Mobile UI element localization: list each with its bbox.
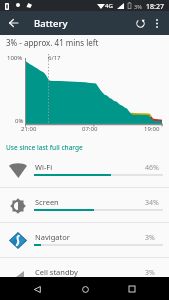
staticText: 18:27 (146, 2, 164, 12)
staticText: 3% (145, 233, 155, 243)
staticText: 3% - approx. 41 mins left (6, 37, 99, 48)
button[interactable]: Refresh (134, 17, 146, 29)
button[interactable]: Navigator (0, 223, 169, 258)
staticText: Screen (35, 197, 59, 207)
staticText: Navigator (35, 232, 70, 242)
button[interactable]: More options (149, 15, 165, 31)
staticText: Battery (34, 17, 68, 30)
staticText: 100% (7, 54, 23, 62)
staticText: 6/17 (48, 54, 61, 62)
staticText: 34% (145, 198, 159, 208)
button[interactable]: Screen (0, 188, 169, 223)
staticText: 0% (15, 117, 24, 125)
button[interactable]: Cell standby (0, 258, 169, 293)
staticText: Wi-Fi (35, 162, 53, 172)
staticText: 21:00 (21, 125, 37, 133)
staticText: 46% (145, 163, 159, 173)
staticText: 4G (105, 2, 113, 10)
staticText: 19:00 (144, 125, 160, 133)
staticText: Cell standby (35, 267, 78, 277)
staticText: Use since last full charge (6, 143, 83, 152)
staticText: 07:00 (82, 125, 98, 133)
staticText: 3% (145, 268, 155, 278)
button[interactable]: Home (74, 278, 96, 300)
button[interactable]: Navigate up (1, 11, 25, 35)
staticText: 3% (134, 3, 142, 10)
button[interactable]: Wi-Fi (0, 153, 169, 188)
button[interactable]: Back (26, 278, 48, 300)
button[interactable]: Recent apps (121, 278, 143, 300)
